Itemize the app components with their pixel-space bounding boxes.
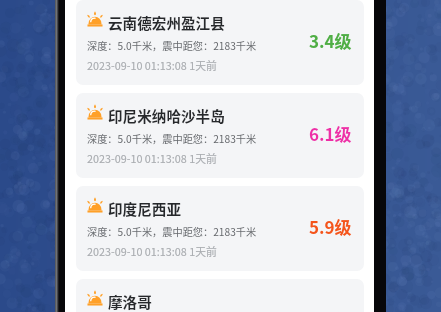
staticText: 6.1级: [309, 121, 352, 146]
staticText: 印度尼西亚: [108, 198, 181, 219]
button[interactable]: 印度尼西亚: [76, 186, 364, 271]
staticText: 5.9级: [309, 214, 352, 239]
staticText: 深度：5.0千米，震中距您：2183千米: [87, 131, 257, 146]
staticText: 3.4级: [309, 28, 352, 53]
button[interactable]: 云南德宏州盈江县: [76, 0, 364, 85]
staticText: 深度：5.0千米，震中距您：2183千米: [87, 38, 257, 53]
staticText: 深度：5.0千米，震中距您：2183千米: [87, 224, 257, 239]
staticText: 2023-09-10 01:13:08 1天前: [87, 57, 217, 73]
staticText: 云南德宏州盈江县: [108, 12, 225, 33]
staticText: 摩洛哥: [108, 291, 152, 312]
staticText: 2023-09-10 01:13:08 1天前: [87, 150, 217, 166]
button[interactable]: 印尼米纳哈沙半岛: [76, 93, 364, 178]
button[interactable]: 摩洛哥: [76, 279, 364, 312]
staticText: 2023-09-10 01:13:08 1天前: [87, 243, 217, 259]
staticText: 印尼米纳哈沙半岛: [108, 105, 225, 126]
